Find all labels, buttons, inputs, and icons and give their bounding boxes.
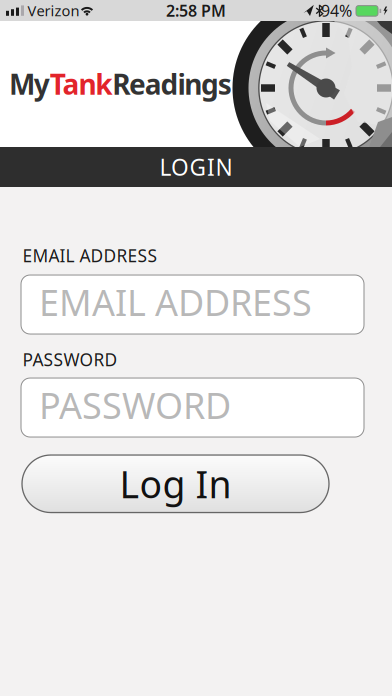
staticText: 94% [321, 0, 352, 21]
staticText: Readings [112, 65, 232, 103]
button[interactable]: Log In [22, 455, 329, 512]
staticText: Verizon [27, 1, 79, 20]
staticText: LOGIN [159, 152, 232, 182]
staticText: EMAIL ADDRESS [39, 278, 312, 326]
staticText: PASSWORD [39, 381, 231, 429]
staticText: 2:58 PM [166, 0, 226, 21]
button[interactable]: EMAIL ADDRESS [21, 275, 364, 334]
staticText: Log In [119, 459, 231, 509]
staticText: Tank [50, 65, 112, 103]
staticText: My [9, 65, 50, 103]
staticText: EMAIL ADDRESS [22, 244, 157, 267]
staticText: PASSWORD [22, 348, 117, 371]
button[interactable]: PASSWORD [21, 378, 364, 437]
